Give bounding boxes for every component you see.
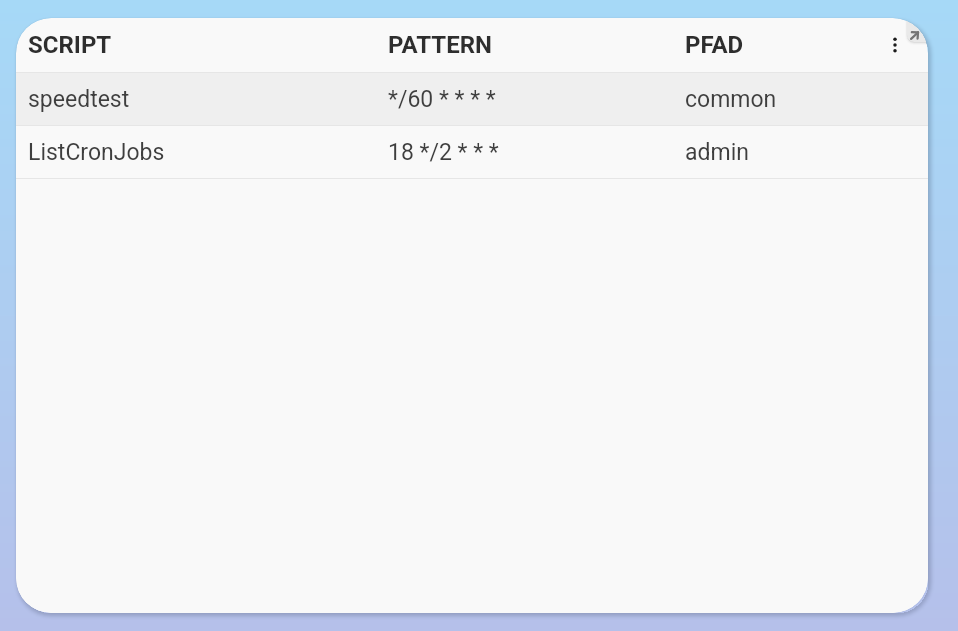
button[interactable]: speedtest — [16, 73, 928, 125]
button[interactable]: More options — [877, 27, 913, 63]
staticText: 18 */2 * * * — [388, 139, 499, 166]
staticText: PATTERN — [388, 31, 492, 59]
staticText: common — [685, 86, 777, 113]
staticText: PFAD — [685, 31, 744, 59]
button[interactable]: SCRIPT — [16, 18, 388, 72]
staticText: speedtest — [28, 86, 130, 113]
button[interactable]: ListCronJobs — [16, 126, 928, 178]
button[interactable]: Expand — [907, 18, 928, 42]
staticText: ListCronJobs — [28, 139, 165, 166]
staticText: */60 * * * * — [388, 86, 496, 113]
staticText: admin — [685, 139, 749, 166]
button[interactable]: PATTERN — [388, 18, 685, 72]
button[interactable]: PFAD — [685, 18, 928, 72]
staticText: SCRIPT — [28, 31, 112, 59]
